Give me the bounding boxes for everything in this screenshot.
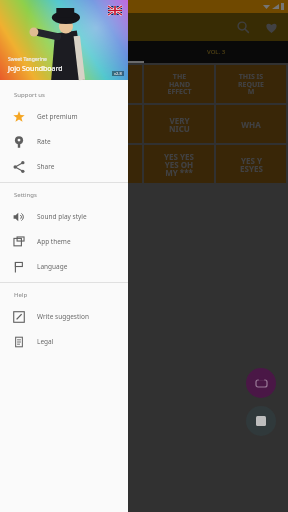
button[interactable]: VERY NICU — [144, 105, 214, 143]
staticText: Legal — [37, 337, 54, 346]
button[interactable]: Write suggestion — [0, 304, 128, 329]
staticText: Share — [37, 162, 55, 171]
staticText: v2.8 — [114, 71, 122, 76]
button[interactable]: Loop — [246, 368, 276, 398]
button[interactable]: THIS IS REQUIE M — [216, 65, 286, 103]
staticText: Jojo Soundboard — [8, 64, 63, 74]
staticText: Sound play style — [37, 212, 87, 221]
staticText: YATAZO — [21, 159, 51, 170]
button[interactable]: Favorites — [262, 18, 280, 36]
button[interactable]: Share — [0, 154, 128, 179]
button[interactable]: TOKIO T OMARE — [1, 105, 70, 143]
button[interactable]: Legal — [0, 329, 128, 354]
button[interactable]: WHA — [216, 105, 286, 143]
staticText: YES Y ESYES — [240, 155, 263, 174]
staticText: Help — [14, 291, 28, 299]
button[interactable]: Rate — [0, 129, 128, 154]
button[interactable]: VOL. 3 — [144, 41, 288, 63]
staticText: Write suggestion — [37, 312, 89, 321]
button[interactable]: Language — [108, 6, 122, 15]
staticText: YES YES YES OH MY *** — [164, 151, 194, 178]
staticText: THIS IS REQUIE M — [238, 72, 264, 96]
staticText: App theme — [37, 237, 71, 246]
button[interactable]: Sound play style — [0, 204, 128, 229]
button[interactable]: TORT URE DANCE — [72, 105, 142, 143]
button[interactable]: YATAZO — [1, 145, 70, 183]
staticText: VERY NICU — [169, 115, 190, 134]
button[interactable]: VOL. 2 — [0, 41, 144, 63]
staticText: Settings — [14, 191, 37, 199]
staticText: Sweet Tangerine — [8, 56, 47, 63]
button[interactable]: YES I AM — [72, 145, 142, 183]
staticText: WHA — [241, 119, 261, 130]
button[interactable]: Get premium — [0, 104, 128, 129]
staticText: Rate — [37, 137, 51, 146]
staticText: Support us — [14, 91, 45, 99]
button[interactable]: STAR PL ATINUM THE WORLD — [1, 65, 70, 103]
staticText: VOL. 2 — [63, 48, 82, 56]
button[interactable]: Language — [0, 254, 128, 279]
staticText: Get premium — [37, 112, 78, 121]
button[interactable]: Search — [234, 18, 252, 36]
staticText: TOKIO T OMARE — [19, 115, 52, 134]
staticText: VOL. 3 — [207, 48, 226, 56]
staticText: Language — [37, 262, 68, 271]
button[interactable]: TASTE OF A LIAR — [72, 65, 142, 103]
button[interactable]: YES YES YES OH MY *** — [144, 145, 214, 183]
button[interactable]: THE HAND EFFECT — [144, 65, 214, 103]
staticText: THE HAND EFFECT — [167, 72, 192, 96]
staticText: STAR PL ATINUM THE WORLD — [21, 69, 50, 100]
button[interactable]: App theme — [0, 229, 128, 254]
staticText: TASTE OF A LIAR — [97, 72, 118, 96]
button[interactable]: YES Y ESYES — [216, 145, 286, 183]
button[interactable]: Stop — [246, 406, 276, 436]
